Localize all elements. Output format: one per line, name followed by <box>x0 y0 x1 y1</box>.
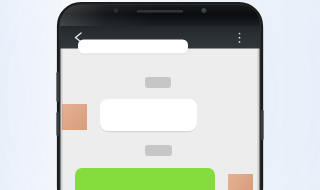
button[interactable] <box>75 168 215 190</box>
button[interactable]: More options <box>230 27 252 48</box>
button[interactable]: Contact avatar <box>62 104 87 130</box>
button[interactable]: Back <box>62 27 88 48</box>
button[interactable]: Your avatar <box>228 174 253 190</box>
